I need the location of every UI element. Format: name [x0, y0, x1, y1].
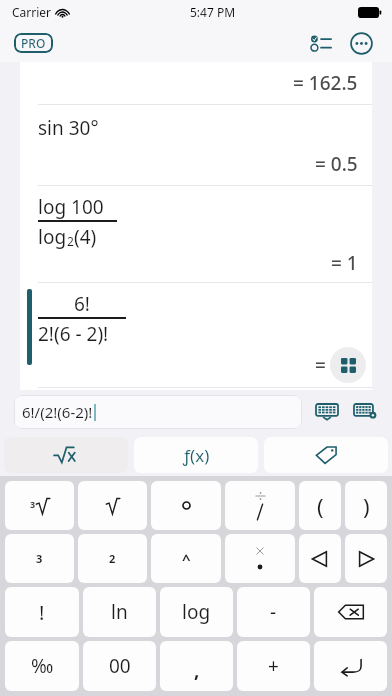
button[interactable]: (: [299, 481, 341, 530]
staticText: 6!/(2!(6-2)!: [22, 402, 93, 422]
button[interactable]: Degrees: [151, 481, 221, 530]
button[interactable]: 00: [83, 641, 156, 691]
button[interactable]: Backspace: [314, 587, 387, 637]
staticText: sin 30°: [38, 115, 99, 141]
staticText: 3: [30, 498, 36, 510]
button[interactable]: Move left: [299, 534, 341, 583]
staticText: 2: [67, 233, 74, 249]
button[interactable]: 6!/(2!(6-2)!: [14, 395, 302, 429]
staticText: 6!: [74, 291, 90, 317]
staticText: 00: [109, 653, 131, 679]
staticText: !: [39, 599, 45, 626]
button[interactable]: ƒ(x): [134, 437, 258, 473]
staticText: Carrier: [12, 4, 52, 20]
button[interactable]: [4, 437, 128, 473]
button[interactable]: ‰: [5, 641, 79, 691]
button[interactable]: Select items: [304, 26, 338, 60]
button[interactable]: log: [160, 587, 233, 637]
button[interactable]: ): [345, 481, 387, 530]
staticText: log 100: [38, 194, 104, 220]
staticText: ): [363, 491, 370, 521]
staticText: = 1: [331, 250, 358, 276]
button[interactable]: Divide: [225, 481, 295, 530]
staticText: ^: [182, 549, 191, 569]
button[interactable]: !: [5, 587, 79, 637]
button[interactable]: Multiply: [225, 534, 295, 583]
staticText: +: [268, 653, 279, 679]
staticText: log: [38, 224, 67, 250]
button[interactable]: ln: [83, 587, 156, 637]
button[interactable]: Keyboard settings: [350, 397, 380, 427]
staticText: =: [315, 352, 326, 378]
staticText: = 0.5: [315, 151, 358, 177]
button[interactable]: Move right: [345, 534, 387, 583]
staticText: ,: [194, 657, 200, 683]
button[interactable]: +: [237, 641, 310, 691]
button[interactable]: Show result options: [330, 347, 366, 383]
staticText: PRO: [21, 35, 46, 51]
staticText: 2!(6 - 2)!: [38, 321, 109, 347]
button[interactable]: Cube root: [5, 481, 74, 530]
button[interactable]: 2: [78, 534, 147, 583]
staticText: ‰: [31, 653, 54, 679]
staticText: (: [317, 491, 324, 521]
button[interactable]: 6!: [20, 283, 372, 387]
button[interactable]: 3: [5, 534, 74, 583]
button[interactable]: ,: [160, 641, 233, 691]
button[interactable]: [264, 437, 388, 473]
button[interactable]: ^: [151, 534, 221, 583]
staticText: -: [270, 599, 277, 625]
staticText: 5:47 PM: [190, 4, 236, 20]
staticText: 3: [36, 551, 43, 566]
staticText: log: [182, 599, 211, 625]
button[interactable]: Keyboard: [312, 397, 342, 427]
staticText: = 162.5: [293, 70, 358, 96]
button[interactable]: PRO: [14, 33, 53, 53]
staticText: 2: [109, 551, 116, 566]
button[interactable]: -: [237, 587, 310, 637]
button[interactable]: Enter: [314, 641, 387, 691]
button[interactable]: Square root: [78, 481, 147, 530]
staticText: ln: [111, 599, 128, 625]
staticText: (4): [74, 224, 97, 250]
button[interactable]: More options: [344, 26, 378, 60]
staticText: ƒ(x): [183, 444, 210, 467]
